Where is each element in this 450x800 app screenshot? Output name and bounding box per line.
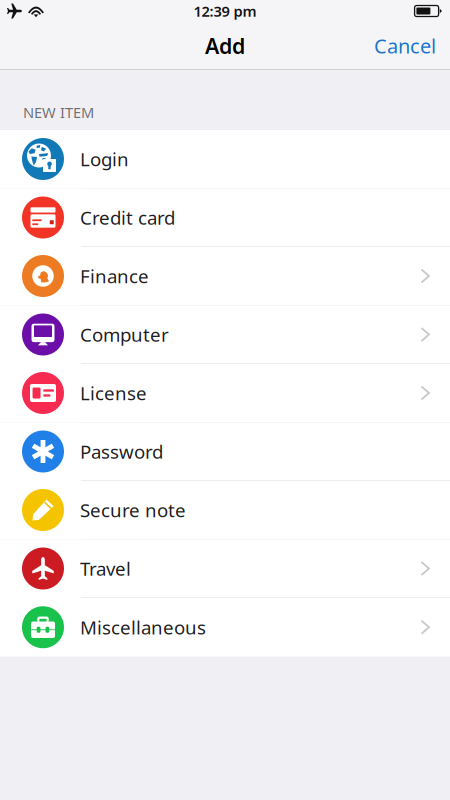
- staticText: Secure note: [80, 498, 186, 522]
- button[interactable]: License: [0, 364, 450, 422]
- staticText: Add: [205, 32, 245, 60]
- staticText: Cancel: [374, 32, 436, 59]
- staticText: NEW ITEM: [23, 102, 94, 122]
- staticText: License: [80, 381, 147, 405]
- staticText: Travel: [80, 556, 131, 581]
- staticText: Miscellaneous: [80, 615, 206, 640]
- button[interactable]: Travel: [0, 539, 450, 598]
- button[interactable]: Credit card: [0, 188, 450, 247]
- staticText: Finance: [80, 264, 149, 288]
- button[interactable]: Miscellaneous: [0, 598, 450, 656]
- staticText: Credit card: [80, 205, 175, 230]
- staticText: 12:39 pm: [193, 1, 256, 21]
- staticText: Password: [80, 439, 163, 464]
- button[interactable]: Login: [0, 130, 450, 188]
- button[interactable]: Secure note: [0, 481, 450, 539]
- staticText: Login: [80, 147, 129, 171]
- button[interactable]: Finance: [0, 247, 450, 305]
- button[interactable]: Cancel: [374, 22, 450, 69]
- staticText: Computer: [80, 322, 169, 347]
- button[interactable]: Computer: [0, 305, 450, 364]
- button[interactable]: Password: [0, 422, 450, 481]
